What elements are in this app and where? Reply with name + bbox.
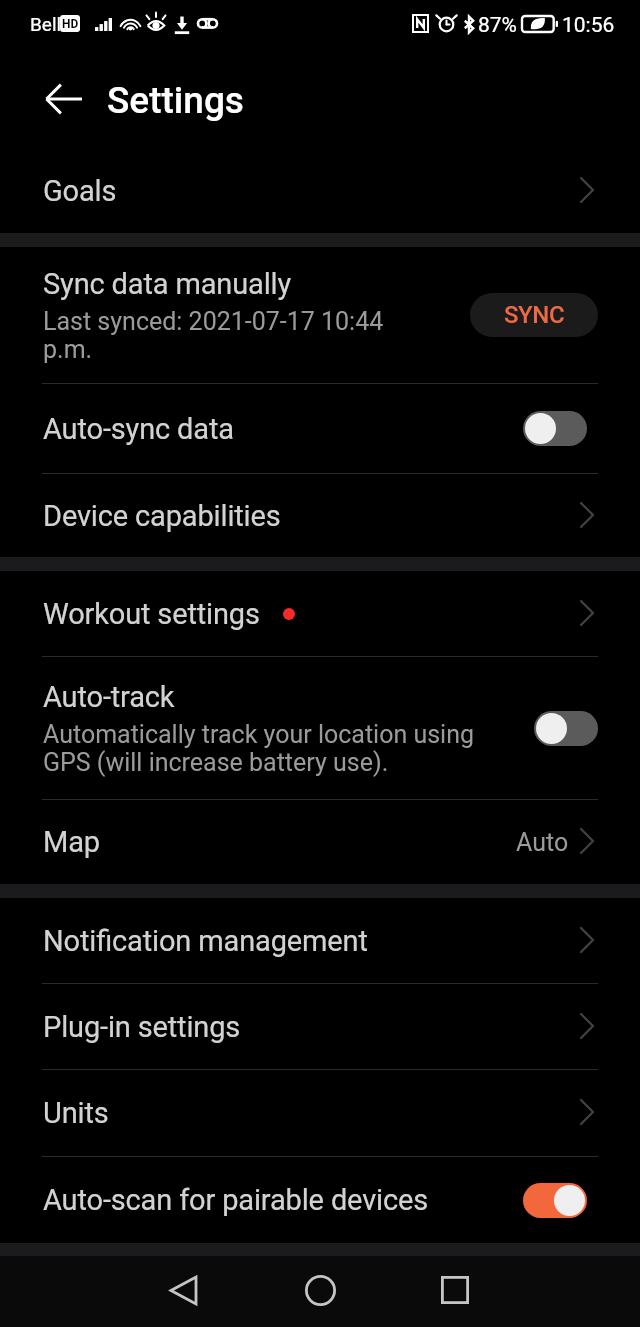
staticText: Sync data manually (43, 267, 292, 301)
button[interactable]: Toggle off (523, 411, 587, 446)
staticText: HD (62, 17, 79, 31)
staticText: SYNC (504, 301, 565, 329)
button[interactable]: SYNC (470, 293, 598, 337)
button[interactable]: Notification management (0, 898, 640, 983)
button[interactable]: Device capabilities (0, 474, 640, 557)
staticText: Goals (43, 174, 117, 208)
staticText: Auto-scan for pairable devices (43, 1183, 429, 1217)
staticText: Plug-in settings (43, 1010, 241, 1044)
staticText: Workout settings (43, 597, 260, 631)
button[interactable]: Map (0, 800, 640, 884)
button[interactable]: Plug-in settings (0, 984, 640, 1069)
button[interactable]: Auto-track (0, 657, 640, 799)
staticText: Notification management (43, 924, 368, 958)
button[interactable]: Sync data manually (0, 247, 640, 383)
button[interactable]: Back (40, 75, 88, 123)
staticText: Units (43, 1096, 109, 1130)
button[interactable]: Units (0, 1070, 640, 1156)
button[interactable]: Workout settings (0, 571, 640, 656)
button[interactable]: Toggle on (523, 1183, 587, 1218)
button[interactable]: Auto-sync data (0, 384, 640, 473)
staticText: 87% (478, 13, 517, 38)
staticText: Auto-track (43, 680, 175, 714)
button[interactable]: Goals (0, 140, 640, 233)
button[interactable]: Toggle off (534, 711, 598, 746)
staticText: 10:56 (562, 13, 615, 38)
staticText: Device capabilities (43, 499, 281, 533)
staticText: Auto (516, 828, 569, 857)
staticText: Bell (30, 13, 62, 35)
staticText: Last synced: 2021-07-17 10:44 p.m. (43, 307, 395, 364)
staticText: Settings (107, 79, 244, 122)
button[interactable]: Home (289, 1259, 351, 1321)
button[interactable]: Auto-scan for pairable devices (0, 1157, 640, 1243)
staticText: Map (43, 825, 100, 859)
staticText: Auto-sync data (43, 412, 234, 446)
button[interactable]: Back (152, 1259, 214, 1321)
button[interactable]: Recents (424, 1259, 486, 1321)
staticText: Automatically track your location using … (43, 720, 483, 777)
